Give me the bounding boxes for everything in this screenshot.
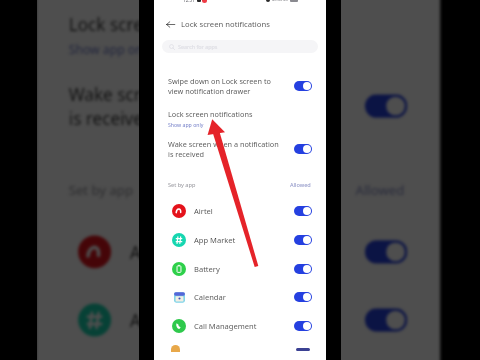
staticText: App Market (194, 235, 236, 245)
button[interactable]: App Market (154, 231, 326, 253)
staticText: is received (168, 149, 205, 159)
staticText: Allowed (290, 181, 311, 189)
staticText: Airtel (130, 240, 175, 264)
button[interactable]: Lock screen notifications (181, 19, 270, 29)
staticText: Calendar (194, 292, 226, 302)
button[interactable]: Toggle switch (294, 81, 312, 91)
staticText: 12:31 (183, 0, 195, 3)
button[interactable]: Toggle switch (294, 264, 312, 274)
staticText: Set by app (168, 181, 196, 189)
staticText: Lock screen notifications (168, 109, 253, 119)
staticText: is received (69, 106, 156, 130)
staticText: view notification drawer (168, 86, 251, 96)
button[interactable]: Calendar (154, 288, 326, 310)
button[interactable]: App Market (37, 299, 440, 351)
button[interactable]: Lock screen notifications (37, 0, 440, 57)
staticText: App Market (130, 308, 229, 332)
staticText: Swipe down on Lock screen to (168, 76, 271, 86)
button[interactable]: Toggle switch (294, 292, 312, 302)
button[interactable]: Wake screen when a notification (37, 68, 440, 130)
staticText: Allowed (356, 181, 405, 200)
button[interactable] (154, 344, 326, 360)
button[interactable]: Search for apps (162, 40, 318, 53)
staticText: Show app only (168, 121, 204, 128)
button[interactable]: Toggle switch (365, 94, 407, 118)
staticText: Set by app (69, 181, 134, 200)
button[interactable]: Battery (154, 260, 326, 282)
button[interactable]: Back (162, 18, 179, 31)
button[interactable]: Toggle switch (294, 321, 312, 331)
staticText: Airtel (194, 206, 213, 216)
button[interactable]: Wake screen when a notification (154, 133, 326, 159)
staticText: Wake screen when a notification (168, 139, 279, 149)
staticText: Lock screen notifications (181, 19, 270, 29)
button[interactable]: Airtel (154, 202, 326, 224)
staticText: Search for apps (178, 43, 218, 50)
button[interactable]: Toggle switch (365, 240, 407, 264)
button[interactable]: Toggle switch (294, 206, 312, 216)
button[interactable]: Lock screen notifications (154, 104, 326, 128)
button[interactable]: Toggle switch (365, 308, 407, 332)
staticText: Wake screen when a notification (69, 83, 330, 106)
staticText: Show app only (69, 40, 153, 57)
staticText: Battery (194, 264, 220, 274)
button[interactable]: Swipe down on Lock screen to (154, 70, 326, 96)
staticText: Call Management (194, 321, 257, 331)
button[interactable]: Call Management (154, 317, 326, 339)
staticText: 46 46 46 (272, 0, 288, 2)
button[interactable]: Toggle switch (294, 235, 312, 245)
button[interactable]: Airtel (37, 231, 440, 282)
button[interactable]: Toggle switch (294, 144, 312, 154)
staticText: Lock screen notifications (69, 12, 268, 36)
